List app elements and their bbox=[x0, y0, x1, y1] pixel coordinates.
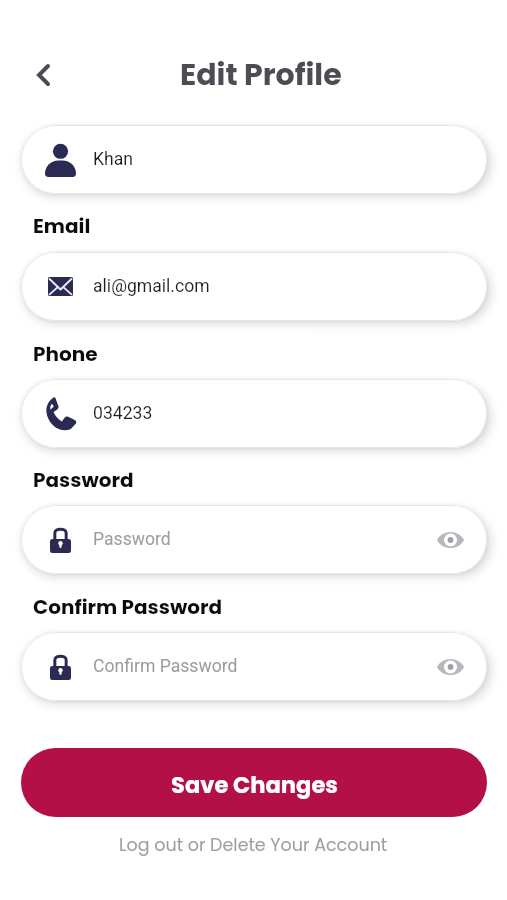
staticText: Confirm Password bbox=[93, 656, 238, 677]
button[interactable]: Khan bbox=[21, 125, 487, 194]
staticText: Password bbox=[93, 529, 171, 550]
button[interactable]: Log out or Delete Your Account bbox=[0, 833, 507, 858]
staticText: Password bbox=[33, 466, 134, 494]
staticText: ali@gmail.com bbox=[93, 276, 210, 297]
button[interactable]: 034233 bbox=[21, 379, 487, 448]
staticText: 034233 bbox=[93, 403, 153, 424]
staticText: Khan bbox=[93, 149, 134, 170]
staticText: Confirm Password bbox=[33, 593, 223, 621]
button[interactable]: ali@gmail.com bbox=[21, 252, 487, 321]
staticText: Email bbox=[33, 212, 91, 240]
staticText: Save Changes bbox=[171, 769, 338, 801]
staticText: Edit Profile bbox=[180, 54, 342, 96]
button[interactable]: Show password bbox=[431, 521, 469, 559]
button[interactable]: Password bbox=[21, 505, 487, 574]
staticText: Log out or Delete Your Account bbox=[119, 833, 388, 858]
button[interactable]: Back bbox=[24, 56, 62, 94]
button[interactable]: Confirm Password bbox=[21, 632, 487, 701]
button[interactable]: Save Changes bbox=[21, 748, 487, 817]
button[interactable]: Show password bbox=[431, 648, 469, 686]
staticText: Phone bbox=[33, 340, 98, 368]
